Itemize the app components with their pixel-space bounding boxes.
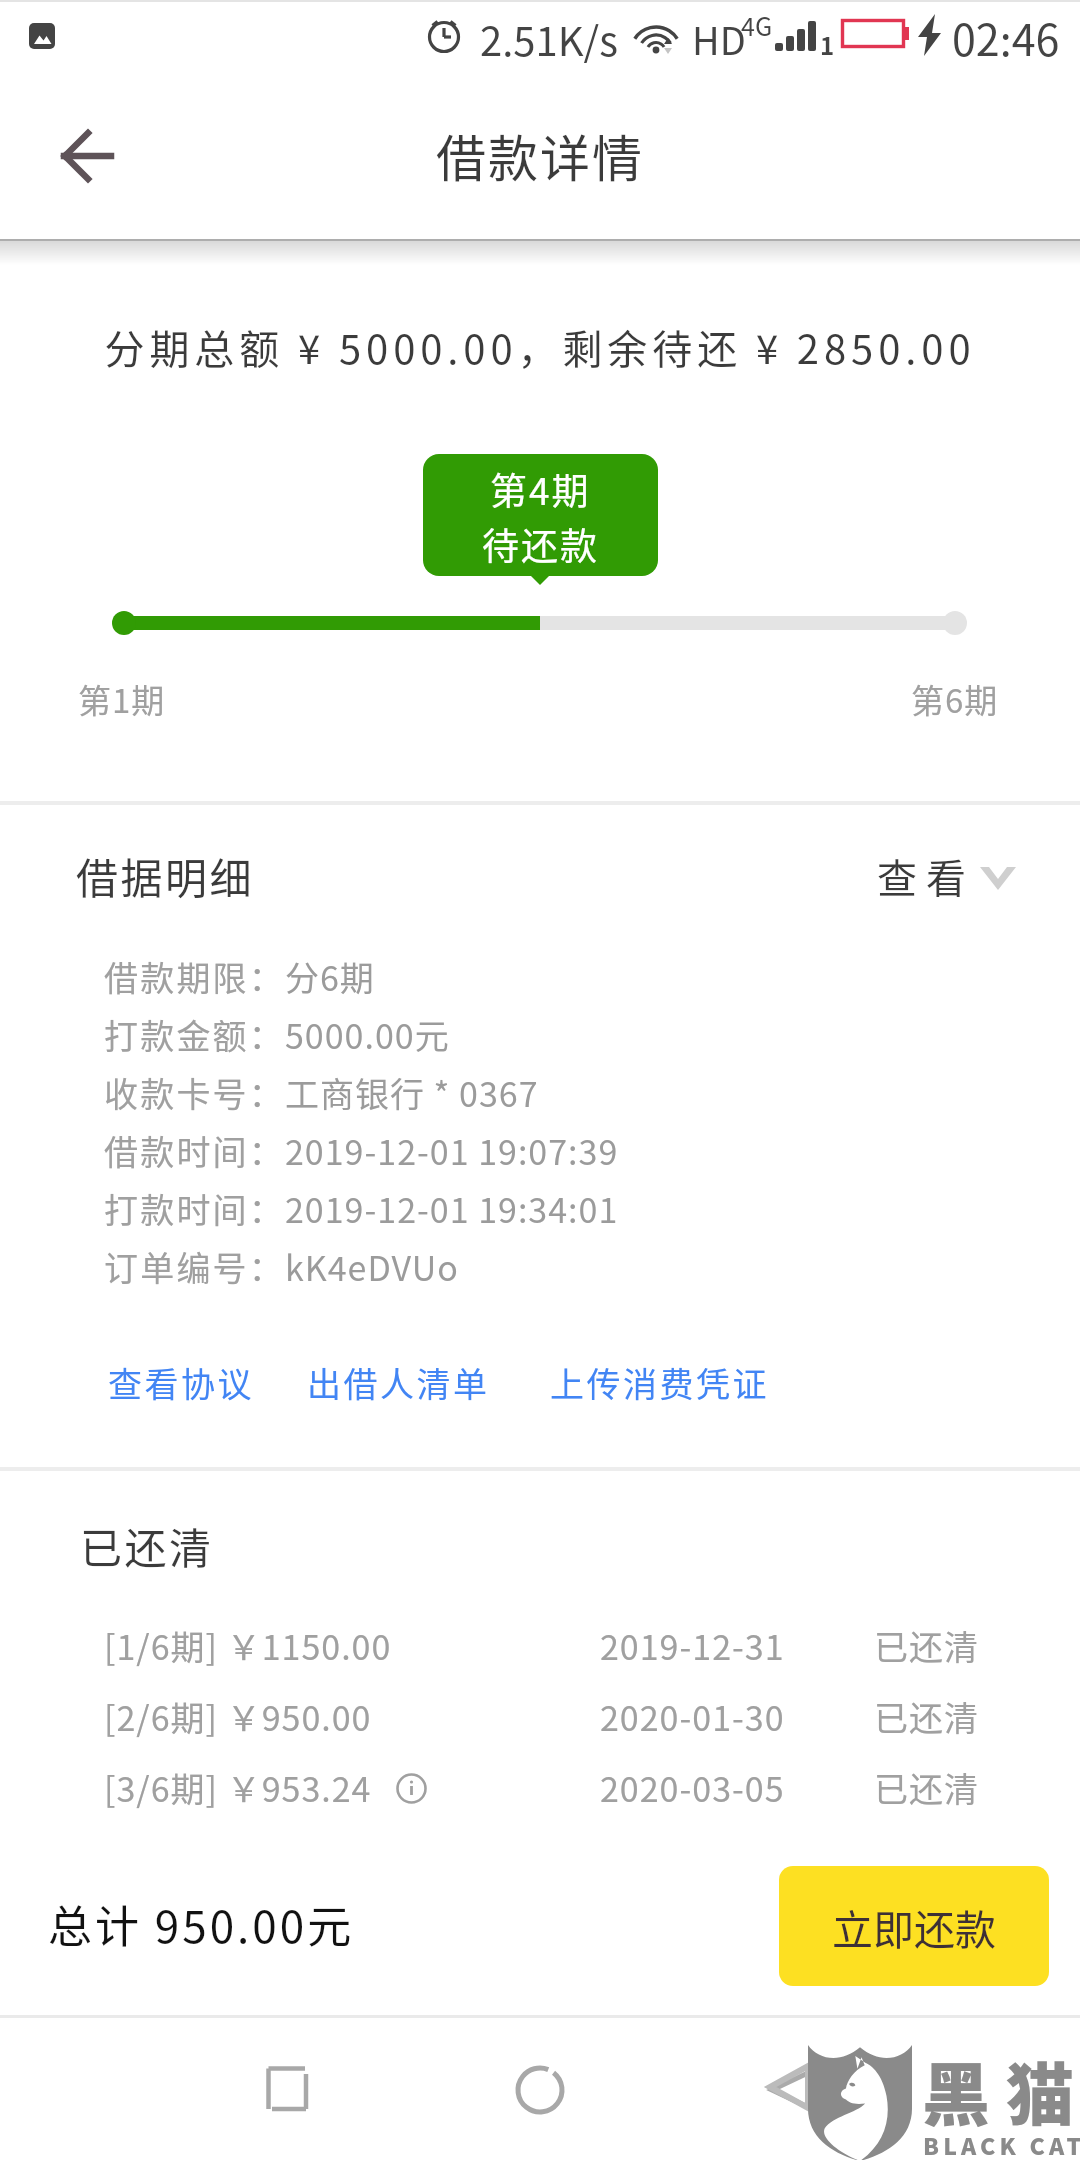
staticText: 2019-12-01 19:34:01 — [285, 1184, 619, 1233]
button[interactable]: 出借人清单 — [297, 1348, 504, 1406]
staticText: 借款详情 — [0, 119, 1080, 191]
staticText: 2.51K/s — [480, 10, 618, 68]
staticText: 出借人清单 — [307, 1358, 490, 1407]
staticText: 02:46 — [952, 6, 1060, 68]
staticText: 2019-12-31 — [600, 1621, 785, 1670]
staticText: 上传消费凭证 — [550, 1358, 769, 1407]
staticText: 打款金额： — [104, 1010, 285, 1059]
button[interactable]: Back — [722, 2040, 858, 2140]
staticText: 1 — [820, 27, 835, 62]
staticText: 借据明细 — [76, 845, 255, 906]
staticText: 黑猫 — [922, 2041, 1080, 2139]
staticText: [1/6期] ￥1150.00 — [104, 1621, 392, 1670]
staticText: 查看 — [877, 847, 975, 905]
staticText: 借款时间： — [104, 1126, 285, 1175]
staticText: 分期总额 ¥ 5000.00，剩余待还 ¥ 2850.00 — [0, 318, 1080, 376]
staticText: 第4期 — [490, 462, 591, 516]
staticText: 已还清 — [874, 1621, 979, 1670]
staticText: 查看协议 — [108, 1358, 254, 1407]
staticText: kK4eDVUo — [285, 1242, 459, 1291]
staticText: 立即还款 — [832, 1897, 996, 1956]
button[interactable]: Back — [36, 80, 146, 240]
button[interactable]: Home — [472, 2040, 608, 2140]
staticText: 2020-01-30 — [600, 1692, 785, 1741]
staticText: 收款卡号： — [104, 1068, 285, 1117]
staticText: 总计 950.00元 — [48, 1892, 355, 1956]
button[interactable]: Recent apps — [222, 2040, 358, 2140]
staticText: 已还清 — [874, 1692, 979, 1741]
staticText: HD — [692, 11, 746, 66]
staticText: 4G — [741, 7, 773, 43]
staticText: 第6期 — [911, 675, 999, 723]
button[interactable]: 查看 — [858, 838, 1032, 912]
staticText: 2020-03-05 — [600, 1763, 785, 1812]
staticText: 5000.00元 — [285, 1010, 450, 1059]
staticText: 打款时间： — [104, 1184, 285, 1233]
button[interactable]: 查看协议 — [98, 1348, 264, 1406]
staticText: BLACK CAT — [923, 2128, 1080, 2160]
button[interactable]: 上传消费凭证 — [540, 1348, 780, 1406]
staticText: [2/6期] ￥950.00 — [104, 1692, 372, 1741]
staticText: 工商银行 * 0367 — [285, 1068, 539, 1117]
staticText: 待还款 — [482, 517, 599, 571]
staticText: 第1期 — [78, 675, 166, 723]
staticText: 借款期限： — [104, 952, 285, 1001]
staticText: [3/6期] ￥953.24 — [104, 1763, 372, 1812]
staticText: 已还清 — [874, 1763, 979, 1812]
staticText: 订单编号： — [104, 1242, 285, 1291]
staticText: 已还清 — [80, 1515, 214, 1576]
button[interactable]: 立即还款 — [779, 1866, 1049, 1986]
staticText: 2019-12-01 19:07:39 — [285, 1126, 619, 1175]
staticText: 分6期 — [285, 952, 375, 1001]
